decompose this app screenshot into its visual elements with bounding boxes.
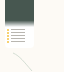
- button[interactable]: [5, 31, 34, 34]
- button[interactable]: [5, 37, 34, 40]
- button[interactable]: [5, 28, 34, 31]
- button[interactable]: [5, 40, 34, 43]
- button[interactable]: [5, 34, 34, 37]
